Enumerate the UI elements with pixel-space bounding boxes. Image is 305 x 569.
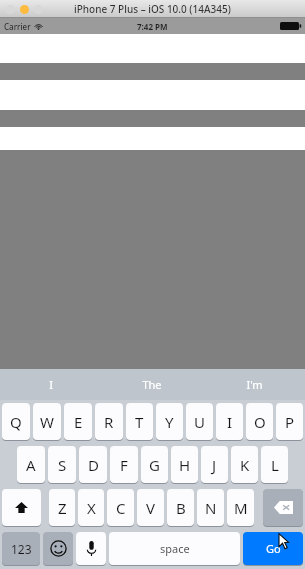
button[interactable]: H bbox=[171, 446, 198, 483]
button[interactable]: Y bbox=[156, 403, 183, 440]
button[interactable]: B bbox=[167, 489, 194, 526]
staticText: I bbox=[227, 412, 233, 432]
button[interactable]: C bbox=[107, 489, 134, 526]
staticText: The bbox=[142, 377, 162, 392]
button[interactable]: A bbox=[17, 446, 45, 483]
staticText: E bbox=[74, 412, 83, 432]
staticText: O bbox=[254, 412, 266, 432]
button[interactable]: U bbox=[186, 403, 213, 440]
staticText: Go bbox=[266, 541, 281, 556]
staticText: Y bbox=[165, 412, 174, 432]
staticText: N bbox=[205, 498, 217, 518]
staticText: I bbox=[49, 377, 53, 392]
button[interactable]: I bbox=[216, 403, 243, 440]
staticText: C bbox=[116, 498, 126, 518]
button[interactable]: L bbox=[261, 446, 288, 483]
button[interactable]: Minimize bbox=[20, 5, 29, 14]
button[interactable]: V bbox=[137, 489, 164, 526]
button[interactable]: W bbox=[33, 403, 61, 440]
staticText: T bbox=[135, 412, 144, 432]
button[interactable]: Z bbox=[49, 489, 75, 526]
staticText: R bbox=[104, 412, 114, 432]
button[interactable]: K bbox=[231, 446, 258, 483]
staticText: Q bbox=[10, 412, 22, 432]
staticText: Carrier bbox=[4, 21, 31, 32]
button[interactable]: Shift bbox=[2, 489, 41, 526]
button[interactable]: I bbox=[0, 369, 101, 400]
button[interactable]: Numbers bbox=[2, 532, 40, 565]
staticText: Z bbox=[58, 498, 67, 518]
button[interactable]: I'm bbox=[203, 369, 305, 400]
staticText: M bbox=[234, 498, 248, 518]
staticText: W bbox=[40, 412, 54, 432]
staticText: X bbox=[87, 498, 96, 518]
staticText: B bbox=[176, 498, 186, 518]
button[interactable]: Dictation bbox=[76, 532, 106, 565]
staticText: V bbox=[146, 498, 156, 518]
button[interactable]: P bbox=[276, 403, 303, 440]
staticText: L bbox=[271, 455, 279, 475]
staticText: A bbox=[26, 455, 36, 475]
button[interactable]: N bbox=[197, 489, 224, 526]
button[interactable]: S bbox=[48, 446, 76, 483]
staticText: D bbox=[88, 455, 99, 475]
staticText: G bbox=[149, 455, 160, 475]
staticText: P bbox=[285, 412, 295, 432]
button[interactable]: M bbox=[227, 489, 254, 526]
button[interactable]: space bbox=[109, 532, 240, 565]
button[interactable]: R bbox=[95, 403, 123, 440]
staticText: U bbox=[194, 412, 205, 432]
button[interactable]: Q bbox=[2, 403, 30, 440]
button[interactable]: T bbox=[126, 403, 153, 440]
button[interactable]: G bbox=[141, 446, 168, 483]
staticText: 123 bbox=[11, 541, 32, 557]
staticText: space bbox=[160, 541, 190, 556]
button[interactable]: Backspace bbox=[263, 489, 303, 526]
button[interactable]: D bbox=[79, 446, 107, 483]
button[interactable]: Go bbox=[243, 532, 303, 565]
button[interactable]: F bbox=[110, 446, 138, 483]
staticText: I'm bbox=[246, 377, 263, 392]
staticText: F bbox=[120, 455, 128, 475]
button[interactable]: X bbox=[78, 489, 104, 526]
staticText: J bbox=[212, 455, 217, 475]
button[interactable]: E bbox=[64, 403, 92, 440]
staticText: 7:42 PM bbox=[137, 21, 168, 32]
staticText: iPhone 7 Plus – iOS 10.0 (14A345) bbox=[74, 2, 231, 16]
button[interactable]: The bbox=[101, 369, 203, 400]
staticText: S bbox=[58, 455, 67, 475]
button[interactable]: J bbox=[201, 446, 228, 483]
staticText: K bbox=[240, 455, 250, 475]
staticText: H bbox=[179, 455, 191, 475]
button[interactable]: Emoji bbox=[43, 532, 73, 565]
button[interactable]: O bbox=[246, 403, 273, 440]
